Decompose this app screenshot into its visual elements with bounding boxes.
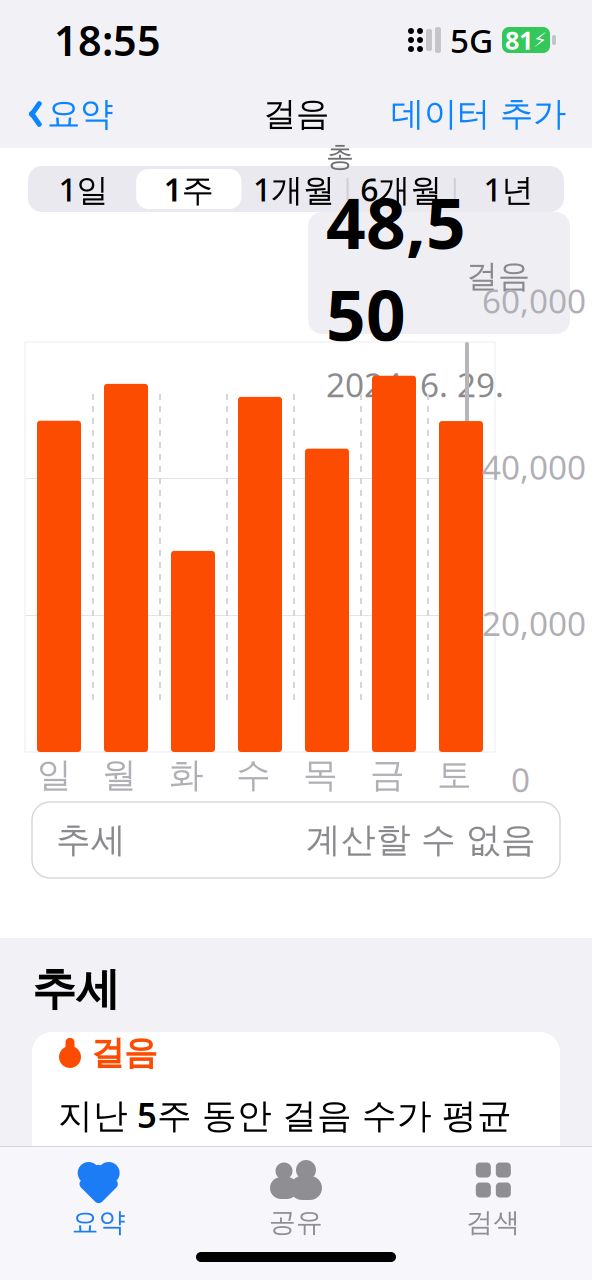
staticText: 추세: [56, 819, 126, 861]
staticText: 60,000: [482, 278, 586, 323]
button[interactable]: 검색: [395, 1160, 592, 1239]
staticText: 걸음: [263, 93, 329, 134]
staticText: 48,550: [326, 176, 466, 360]
button[interactable]: 1개월: [241, 169, 347, 209]
staticText: 걸음: [466, 256, 530, 296]
staticText: 2024. 6. 29.: [326, 362, 504, 406]
staticText: 총: [326, 140, 354, 174]
staticText: 20,000: [482, 601, 586, 645]
staticText: 요약: [72, 1206, 126, 1239]
button[interactable]: 걸음: [32, 1032, 560, 1162]
staticText: ⚡︎: [533, 29, 547, 51]
staticText: 81: [505, 23, 533, 57]
staticText: 1주: [164, 168, 214, 210]
staticText: 데이터 추가: [391, 93, 566, 134]
staticText: 18:55: [54, 13, 161, 67]
button[interactable]: 1주: [136, 169, 241, 209]
button[interactable]: 데이터 추가: [379, 85, 578, 142]
staticText: 0: [511, 757, 530, 802]
button[interactable]: 요약: [0, 1160, 197, 1239]
staticText: 일: [37, 754, 72, 796]
staticText: 5G: [450, 18, 493, 62]
button[interactable]: 공유: [197, 1160, 395, 1239]
staticText: 목: [303, 754, 338, 796]
staticText: 계산할 수 없음: [306, 819, 536, 861]
staticText: 공유: [269, 1206, 323, 1239]
button[interactable]: 1년: [456, 169, 561, 209]
staticText: 1년: [483, 168, 533, 210]
staticText: 지난 5주 동안 걸음 수가 평균적으로 늘었습니다.: [58, 1091, 512, 1184]
staticText: 수: [236, 754, 271, 796]
staticText: 화: [169, 754, 204, 796]
button[interactable]: 추세: [32, 802, 560, 878]
staticText: 추세: [32, 962, 120, 1016]
staticText: 1일: [59, 168, 109, 210]
staticText: 검색: [466, 1206, 520, 1239]
staticText: 금: [370, 754, 405, 796]
staticText: 40,000: [482, 445, 586, 489]
staticText: 월: [102, 754, 137, 796]
button[interactable]: 요약: [10, 85, 127, 142]
staticText: 토: [437, 754, 472, 796]
staticText: 6개월: [360, 168, 442, 210]
staticText: 요약: [47, 93, 113, 134]
staticText: 걸음: [91, 1032, 157, 1073]
button[interactable]: 1일: [31, 169, 136, 209]
staticText: 1개월: [253, 168, 335, 210]
button[interactable]: 6개월: [349, 169, 454, 209]
